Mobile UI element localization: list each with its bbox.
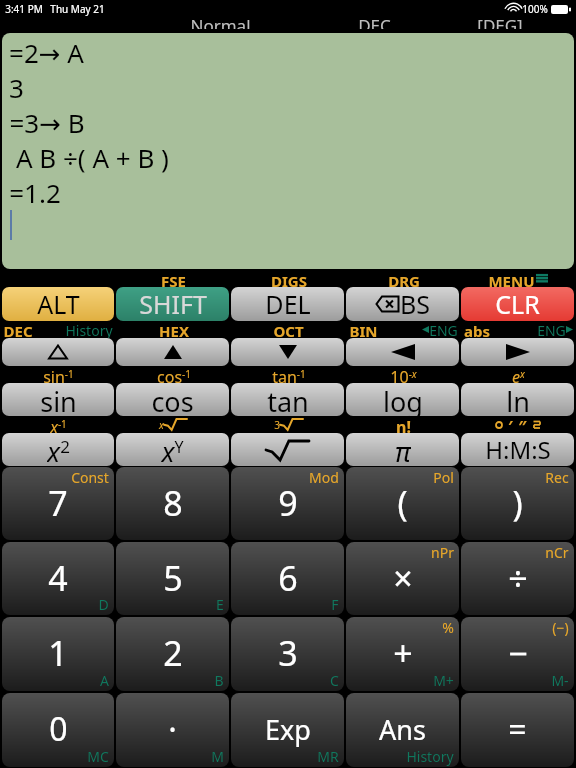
staticText: Ans: [379, 711, 426, 748]
staticText: =1.2: [9, 175, 61, 210]
staticText: ENG: [537, 321, 566, 338]
staticText: (: [397, 480, 408, 526]
button[interactable]: +: [346, 617, 459, 691]
staticText: [DEG]: [477, 14, 523, 29]
staticText: =3→ B: [9, 105, 85, 140]
button[interactable]: Exp: [231, 693, 344, 767]
button[interactable]: Cursor down: [231, 338, 344, 366]
staticText: DEL: [265, 287, 311, 321]
button[interactable]: ·: [116, 693, 229, 767]
button[interactable]: cos: [116, 383, 229, 416]
staticText: C: [330, 671, 339, 690]
staticText: =: [508, 707, 527, 751]
button[interactable]: H:M:S: [461, 433, 574, 466]
staticText: BS: [400, 287, 430, 321]
staticText: ex: [512, 366, 525, 383]
staticText: Pol: [433, 468, 454, 487]
button[interactable]: Cursor right: [461, 338, 574, 366]
staticText: DIGS: [271, 271, 307, 287]
button[interactable]: Square root: [231, 433, 344, 466]
staticText: ″: [518, 416, 527, 433]
button[interactable]: Cursor left: [346, 338, 459, 366]
staticText: M+: [433, 671, 454, 690]
button[interactable]: x2: [2, 433, 114, 466]
staticText: ENG: [429, 321, 458, 338]
button[interactable]: sin: [2, 383, 114, 416]
button[interactable]: CLR: [461, 287, 574, 321]
staticText: +: [393, 630, 413, 676]
staticText: BIN: [349, 321, 378, 338]
staticText: (−): [552, 618, 569, 637]
staticText: sin: [40, 383, 77, 416]
staticText: 5: [163, 555, 183, 601]
button[interactable]: 1: [2, 617, 114, 691]
staticText: Const: [71, 468, 109, 487]
staticText: FSE: [161, 271, 186, 287]
button[interactable]: π: [346, 433, 459, 466]
staticText: 3: [274, 418, 280, 432]
staticText: cos: [151, 383, 194, 416]
staticText: x-1: [50, 416, 67, 433]
staticText: ALT: [37, 287, 80, 321]
button[interactable]: log: [346, 383, 459, 416]
staticText: F: [331, 595, 339, 614]
staticText: 9: [278, 480, 298, 526]
button[interactable]: Ans: [346, 693, 459, 767]
staticText: abs: [464, 321, 490, 338]
button[interactable]: 3: [231, 617, 344, 691]
staticText: n!: [396, 416, 411, 433]
button[interactable]: 6: [231, 542, 344, 615]
staticText: B: [214, 671, 224, 690]
staticText: x: [159, 418, 164, 432]
button[interactable]: Cursor up: [116, 338, 229, 366]
staticText: SHIFT: [139, 287, 207, 321]
staticText: ×: [393, 555, 413, 601]
button[interactable]: =: [461, 693, 574, 767]
button[interactable]: Page up: [2, 338, 114, 366]
staticText: π: [395, 433, 411, 466]
button[interactable]: ×: [346, 542, 459, 615]
button[interactable]: =2→ A: [2, 33, 574, 269]
staticText: 3: [9, 70, 24, 105]
staticText: DRG: [388, 271, 420, 287]
staticText: 3:41 PM: [5, 2, 43, 16]
staticText: nCr: [545, 543, 569, 562]
button[interactable]: 2: [116, 617, 229, 691]
staticText: Normal: [190, 14, 251, 29]
staticText: D: [98, 595, 109, 614]
staticText: 100%: [522, 2, 548, 16]
staticText: −: [508, 630, 528, 676]
button[interactable]: 5: [116, 542, 229, 615]
button[interactable]: 0: [2, 693, 114, 767]
staticText: x2: [47, 433, 70, 466]
staticText: ): [512, 480, 523, 526]
button[interactable]: 8: [116, 467, 229, 540]
staticText: nPr: [431, 543, 454, 562]
button[interactable]: 7: [2, 467, 114, 540]
staticText: MC: [87, 747, 109, 766]
button[interactable]: tan: [231, 383, 344, 416]
button[interactable]: ALT: [2, 287, 114, 321]
button[interactable]: 4: [2, 542, 114, 615]
staticText: Rec: [545, 468, 569, 487]
staticText: ′: [508, 416, 513, 433]
button[interactable]: ln: [461, 383, 574, 416]
staticText: tan: [267, 383, 309, 416]
staticText: DEC: [3, 321, 33, 338]
staticText: 2: [163, 630, 183, 676]
staticText: OCT: [273, 321, 304, 338]
button[interactable]: BS: [346, 287, 459, 321]
button[interactable]: DEL: [231, 287, 344, 321]
button[interactable]: SHIFT: [116, 287, 229, 321]
button[interactable]: ): [461, 467, 574, 540]
staticText: A: [100, 671, 109, 690]
button[interactable]: (: [346, 467, 459, 540]
staticText: cos-1: [157, 366, 191, 383]
staticText: E: [216, 595, 224, 614]
button[interactable]: ÷: [461, 542, 574, 615]
staticText: 1: [48, 630, 68, 676]
button[interactable]: −: [461, 617, 574, 691]
staticText: 0: [49, 707, 68, 751]
button[interactable]: 9: [231, 467, 344, 540]
button[interactable]: xY: [116, 433, 229, 466]
